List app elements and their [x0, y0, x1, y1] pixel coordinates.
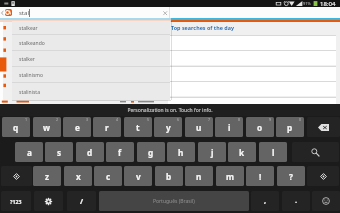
button[interactable]: stalkeando	[12, 34, 170, 50]
button[interactable]: b	[155, 166, 183, 186]
button[interactable]: h	[167, 142, 195, 162]
staticText: Português (Brasil)	[153, 198, 195, 205]
button[interactable]: e	[63, 117, 91, 137]
staticText: c	[106, 171, 111, 182]
button[interactable]: Shift	[307, 166, 339, 186]
button[interactable]: w	[33, 117, 61, 137]
button[interactable]: Emoji	[312, 191, 340, 211]
button[interactable]: p	[276, 117, 304, 137]
button[interactable]: Back	[0, 7, 5, 18]
button[interactable]: Site icon	[5, 9, 12, 16]
button[interactable]: l	[259, 142, 287, 162]
button[interactable]: a	[15, 142, 43, 162]
button[interactable]: c	[94, 166, 122, 186]
staticText: ?123	[10, 198, 22, 205]
button[interactable]: z	[33, 166, 61, 186]
button[interactable]: ,	[251, 191, 279, 211]
staticText: m	[226, 171, 234, 182]
staticText: 7	[208, 117, 211, 122]
staticText: t	[136, 122, 140, 133]
button[interactable]: stalker	[12, 50, 170, 66]
staticText: 18:04	[320, 0, 336, 7]
button[interactable]: r	[93, 117, 121, 137]
button[interactable]: Shift	[1, 166, 32, 186]
button[interactable]: o	[246, 117, 274, 137]
staticText: 5	[147, 117, 150, 122]
button[interactable]: v	[124, 166, 152, 186]
staticText: stalkeando	[19, 40, 45, 47]
staticText: 6	[177, 117, 180, 122]
staticText: b	[166, 171, 172, 182]
staticText: o	[257, 122, 263, 133]
staticText: e	[75, 122, 80, 133]
staticText: y	[166, 122, 171, 133]
button[interactable]	[168, 66, 336, 81]
staticText: g	[148, 147, 154, 158]
button[interactable]: Português (Brasil)	[99, 191, 249, 211]
button[interactable]: ?	[277, 166, 305, 186]
button[interactable]: u	[185, 117, 213, 137]
button[interactable]: .	[282, 191, 310, 211]
button[interactable]: Backspace	[307, 117, 340, 137]
button[interactable]: x	[64, 166, 92, 186]
staticText: u	[196, 122, 202, 133]
button[interactable]: Clear text	[160, 7, 170, 18]
button[interactable]	[168, 97, 336, 112]
staticText: .	[295, 195, 298, 205]
staticText: z	[45, 171, 50, 182]
button[interactable]	[168, 35, 336, 50]
staticText: /	[80, 196, 84, 206]
staticText: 8	[238, 117, 241, 122]
button[interactable]: stalinismo	[12, 66, 170, 82]
button[interactable]: y	[154, 117, 182, 137]
button[interactable]: k	[228, 142, 256, 162]
button[interactable]: stalinista	[12, 82, 170, 100]
staticText: r	[105, 122, 109, 133]
button[interactable]: d	[76, 142, 104, 162]
staticText: 0	[299, 117, 302, 122]
staticText: p	[287, 122, 293, 133]
button[interactable]: q	[2, 117, 30, 137]
staticText: ,	[264, 195, 267, 205]
staticText: f	[118, 147, 122, 158]
staticText: a	[27, 147, 32, 158]
button[interactable]: m	[216, 166, 244, 186]
button[interactable]: Personalization is on. Touch for info.	[0, 104, 340, 116]
button[interactable]: Keyboard settings	[34, 191, 63, 211]
button[interactable]: t	[124, 117, 152, 137]
staticText: n	[196, 171, 202, 182]
staticText: s	[57, 147, 62, 158]
button[interactable]: stalkear	[12, 21, 170, 34]
staticText: x	[76, 171, 81, 182]
staticText: w	[43, 122, 51, 133]
button[interactable]: Search	[292, 142, 339, 162]
button[interactable]: ?123	[1, 191, 31, 211]
staticText: 9	[269, 117, 272, 122]
staticText: stalker	[19, 56, 35, 63]
staticText: 1	[25, 117, 28, 122]
staticText: stalinista	[19, 89, 40, 96]
button[interactable]: n	[185, 166, 213, 186]
staticText: 4	[116, 117, 119, 122]
staticText: h	[178, 147, 184, 158]
staticText: l	[272, 147, 275, 158]
button[interactable]: i	[215, 117, 243, 137]
staticText: i	[228, 122, 231, 133]
staticText: Top searches of the day	[171, 24, 235, 31]
staticText: d	[87, 147, 93, 158]
button[interactable]: !	[246, 166, 274, 186]
staticText: 91%	[303, 1, 311, 6]
staticText: q	[13, 122, 19, 133]
button[interactable]: s	[45, 142, 73, 162]
button[interactable]: g	[137, 142, 165, 162]
button[interactable]: /	[67, 191, 96, 211]
button[interactable]	[168, 50, 336, 65]
staticText: stalinismo	[19, 72, 44, 79]
staticText: ?	[289, 171, 293, 182]
staticText: 3	[86, 117, 89, 122]
button[interactable]: j	[198, 142, 226, 162]
button[interactable]	[168, 81, 336, 96]
button[interactable]: f	[106, 142, 134, 162]
staticText: Personalization is on. Touch for info.	[127, 107, 213, 114]
staticText: !	[259, 171, 262, 182]
